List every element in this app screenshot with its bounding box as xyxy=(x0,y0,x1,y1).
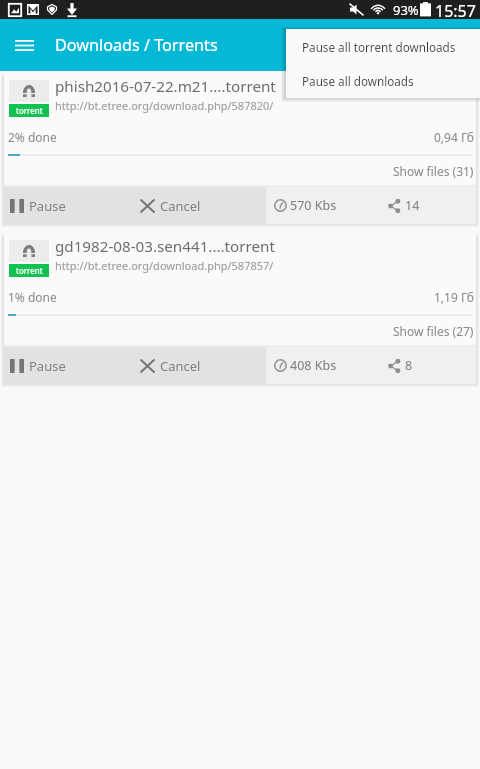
staticText: 0,94 Гб xyxy=(434,129,474,145)
button[interactable]: Open navigation drawer xyxy=(0,19,49,71)
button[interactable]: Show files (27) xyxy=(4,316,476,345)
button[interactable]: Pause xyxy=(4,347,137,384)
button[interactable]: Pause all downloads xyxy=(286,64,480,98)
staticText: 14 xyxy=(405,197,420,214)
staticText: phish2016-07-22.m21....torrent xyxy=(55,76,276,97)
staticText: 570 Kbs xyxy=(290,197,337,214)
staticText: Show files (27) xyxy=(393,323,474,339)
staticText: 1,19 Гб xyxy=(434,289,474,305)
staticText: Pause xyxy=(29,357,66,375)
button[interactable]: Cancel xyxy=(137,187,266,224)
button[interactable]: Pause all torrent downloads xyxy=(286,29,480,64)
staticText: 2% done xyxy=(8,129,57,145)
staticText: Downloads / Torrents xyxy=(55,34,218,56)
staticText: 408 Kbs xyxy=(290,357,337,374)
staticText: Show files (31) xyxy=(393,163,474,179)
button[interactable]: Cancel xyxy=(137,347,266,384)
staticText: 93% xyxy=(393,1,419,19)
button[interactable]: Pause xyxy=(4,187,137,224)
staticText: gd1982-08-03.sen441....torrent xyxy=(55,236,275,257)
staticText: 15:57 xyxy=(435,0,476,19)
staticText: 1% done xyxy=(8,289,57,305)
button[interactable]: Show files (31) xyxy=(4,156,476,185)
staticText: Pause all torrent downloads xyxy=(302,39,456,55)
staticText: Cancel xyxy=(160,197,201,215)
staticText: http://bt.etree.org/download.php/587820/ xyxy=(55,98,274,113)
staticText: 8 xyxy=(405,357,413,374)
staticText: Cancel xyxy=(160,357,201,375)
staticText: Pause xyxy=(29,197,66,215)
staticText: http://bt.etree.org/download.php/587857/ xyxy=(55,258,274,273)
staticText: Pause all downloads xyxy=(302,73,414,89)
staticText: torrent xyxy=(16,265,43,276)
staticText: torrent xyxy=(16,105,43,116)
